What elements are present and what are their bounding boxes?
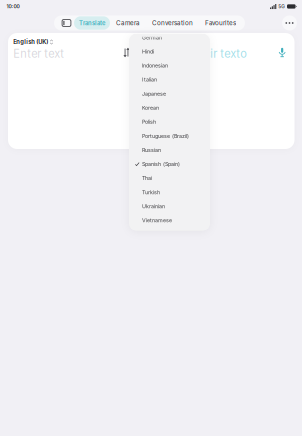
staticText: Hindi (142, 48, 154, 55)
staticText: Korean (142, 105, 159, 111)
staticText: 10:00 (6, 3, 19, 9)
staticText: Italian (142, 76, 157, 83)
button[interactable]: German (129, 30, 210, 44)
staticText: Vietnamese (142, 217, 172, 224)
staticText: Thai (142, 175, 152, 181)
button[interactable]: Portuguese (Brazil) (129, 129, 210, 143)
button[interactable]: More options (282, 15, 297, 30)
button[interactable]: Japanese (129, 87, 210, 101)
button[interactable]: Polish (129, 115, 210, 129)
staticText: Ukrainian (142, 203, 165, 210)
button[interactable]: Turkish (129, 185, 210, 199)
button[interactable]: Spanish (Spain) (129, 157, 210, 171)
button[interactable]: Swap languages (120, 46, 132, 58)
staticText: Enter text (13, 47, 64, 60)
button[interactable]: Italian (129, 73, 210, 87)
staticText: Conversation (152, 19, 193, 27)
staticText: Translate (79, 19, 105, 27)
staticText: Indonesian (142, 62, 168, 69)
button[interactable]: Translate (74, 16, 110, 30)
button[interactable]: Vietnamese (129, 213, 210, 227)
button[interactable]: Dictate (276, 46, 288, 58)
button[interactable]: Camera (110, 16, 146, 30)
button[interactable]: English (UK) (13, 38, 53, 45)
button[interactable]: Thai (129, 171, 210, 185)
staticText: Turkish (142, 189, 160, 195)
staticText: Spanish (Spain) (142, 161, 180, 167)
staticText: Russian (142, 147, 161, 153)
staticText: Favourites (205, 19, 236, 27)
button[interactable]: Ukrainian (129, 199, 210, 213)
button[interactable]: Russian (129, 143, 210, 157)
staticText: 5G (278, 4, 285, 9)
button[interactable]: Conversation (146, 16, 199, 30)
button[interactable]: Favourites (199, 16, 242, 30)
staticText: English (UK) (13, 38, 48, 45)
button[interactable]: Show sidebar (59, 15, 74, 30)
button[interactable]: Hindi (129, 44, 210, 59)
staticText: German (142, 34, 162, 41)
staticText: Camera (116, 19, 140, 27)
staticText: Polish (142, 119, 156, 125)
button[interactable]: Indonesian (129, 59, 210, 73)
button[interactable]: Korean (129, 101, 210, 115)
staticText: Introducir texto (165, 47, 247, 60)
staticText: Japanese (142, 90, 166, 97)
staticText: Portuguese (Brazil) (142, 133, 189, 139)
